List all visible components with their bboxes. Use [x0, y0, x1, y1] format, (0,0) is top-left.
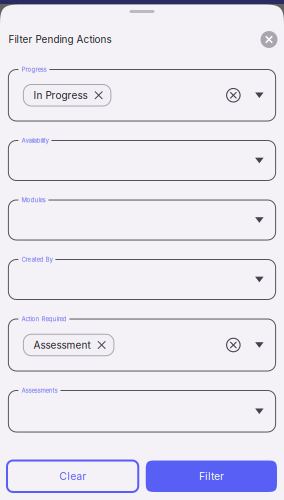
button[interactable]: Close: [260, 31, 277, 48]
staticText: Assessment: [33, 339, 90, 351]
staticText: Assessments: [21, 387, 57, 394]
staticText: Filter Pending Actions: [8, 33, 111, 45]
staticText: Progress: [21, 66, 46, 73]
button[interactable]: In Progress: [8, 69, 276, 121]
button[interactable]: Assessments: [8, 390, 276, 432]
staticText: Clear: [59, 470, 86, 483]
staticText: Filter: [199, 470, 224, 483]
button[interactable]: Created By: [8, 259, 276, 299]
staticText: Availability: [21, 137, 48, 144]
button[interactable]: Filter: [146, 460, 277, 492]
button[interactable]: Modules: [8, 200, 276, 240]
staticText: Created By: [21, 256, 52, 263]
button[interactable]: Assessment: [8, 319, 276, 371]
staticText: Action Required: [21, 315, 66, 323]
staticText: Modules: [21, 196, 45, 204]
button[interactable]: Clear: [7, 460, 138, 492]
button[interactable]: Availability: [8, 140, 276, 180]
staticText: In Progress: [33, 89, 87, 101]
